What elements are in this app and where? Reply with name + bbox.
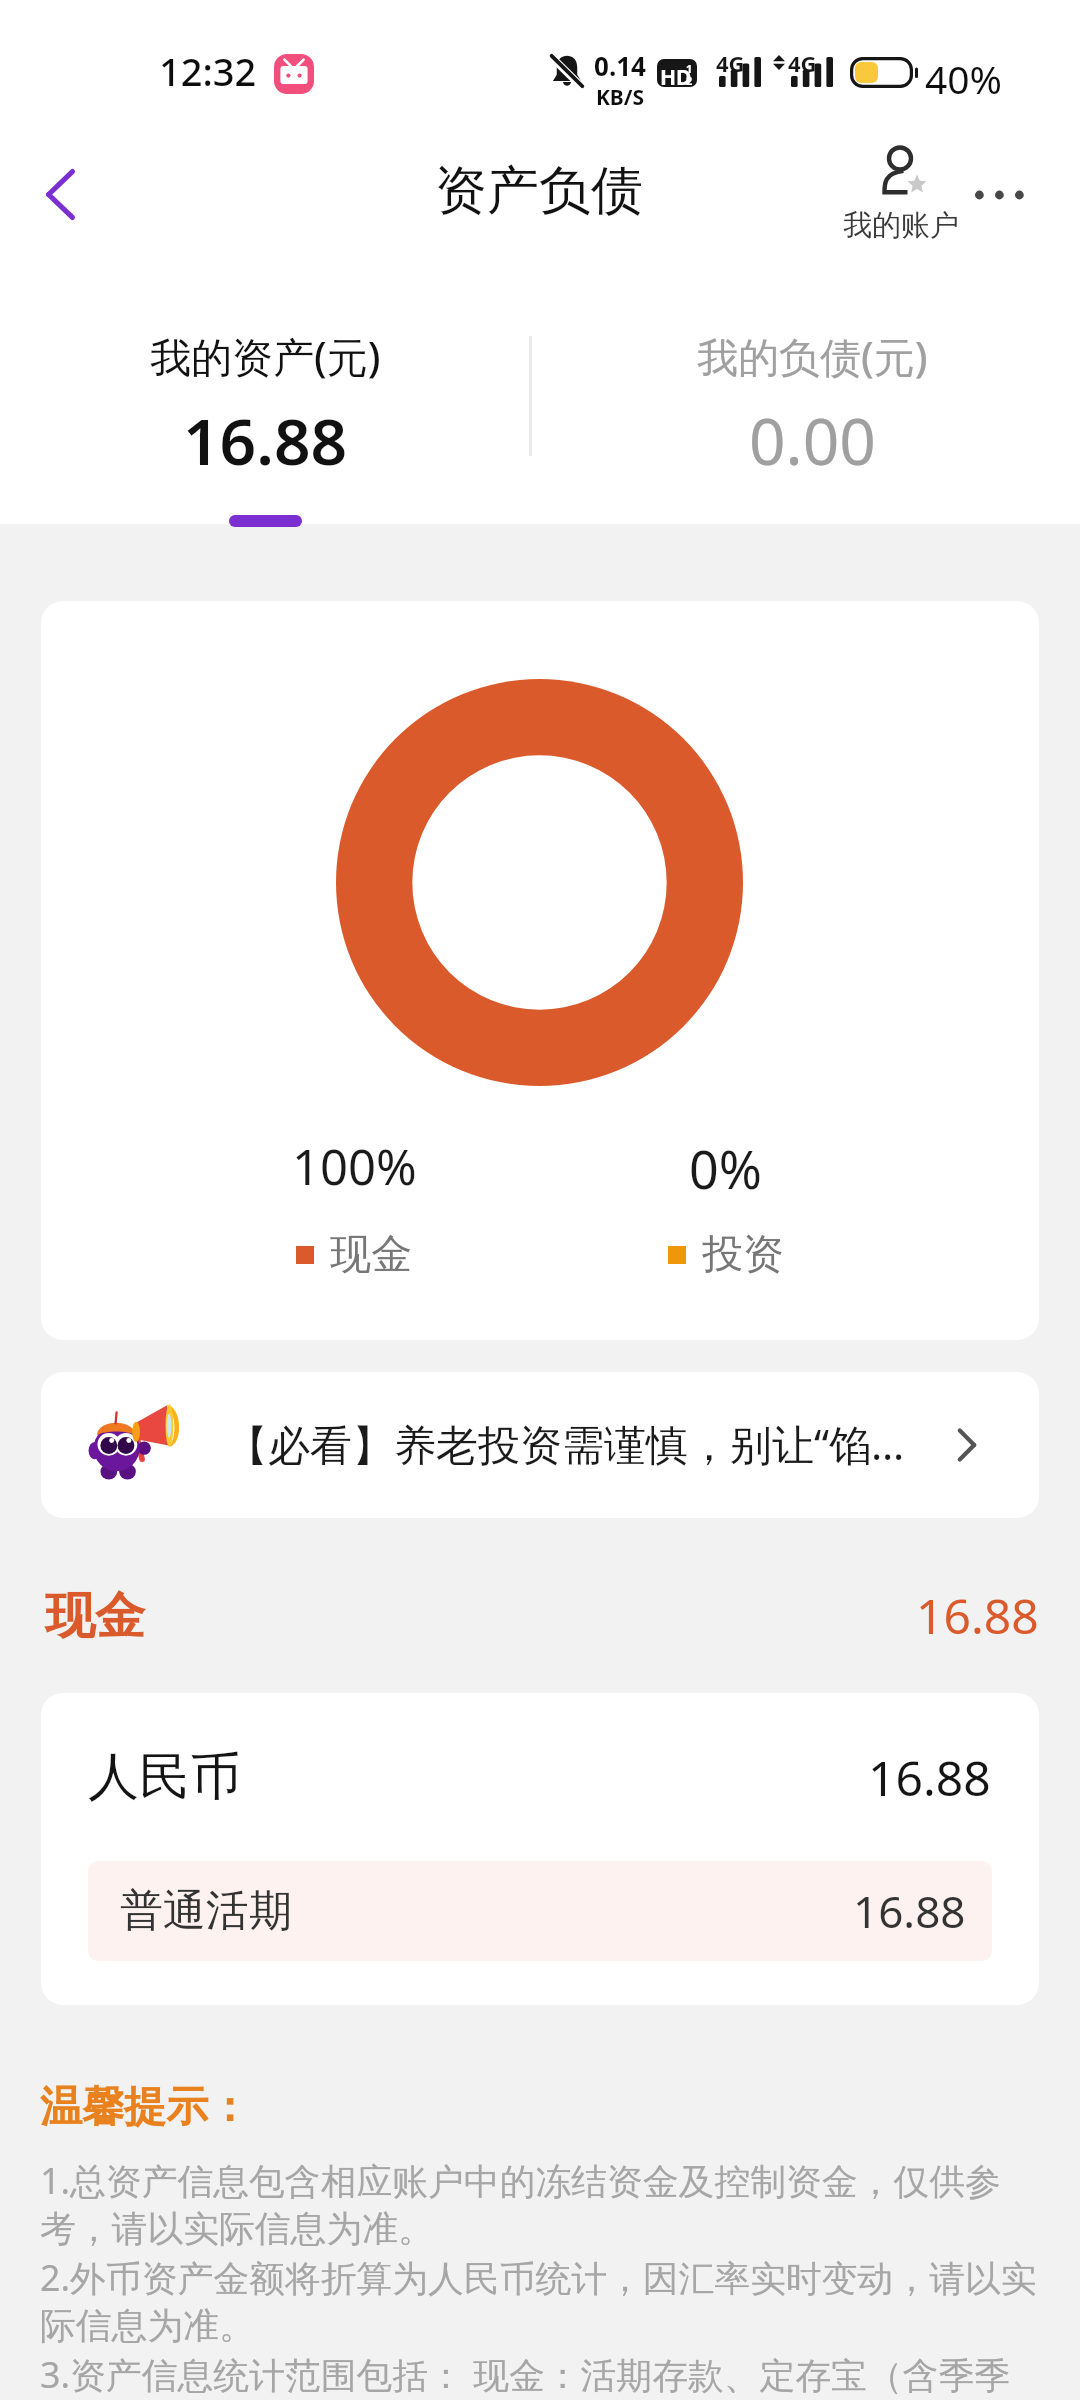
button[interactable]: More options <box>962 151 1050 239</box>
staticText: 2 <box>686 73 697 87</box>
button[interactable]: 【必看】养老投资需谨慎，别让“馅… <box>41 1372 1039 1518</box>
staticText: 现金 <box>330 1229 412 1281</box>
staticText: 1.总资产信息包含相应账户中的冻结资金及控制资金，仅供参 考，请以实际信息为准。… <box>40 2156 1079 2400</box>
staticText: HD <box>660 63 694 87</box>
staticText: 现金 <box>45 1585 145 1648</box>
staticText: 16.88 <box>868 1745 991 1810</box>
staticText: 40% <box>925 52 1003 105</box>
staticText: 16.88 <box>183 397 348 484</box>
staticText: 1 <box>686 61 697 76</box>
staticText: 我的账户 <box>843 207 959 244</box>
staticText: 资产负债 <box>435 158 643 224</box>
staticText: 普通活期 <box>120 1884 292 1938</box>
staticText: 16.88 <box>916 1583 1039 1648</box>
staticText: 4G <box>788 48 817 78</box>
button[interactable]: Back <box>12 146 108 242</box>
staticText: 【必看】养老投资需谨慎，别让“馅… <box>226 1415 905 1472</box>
staticText: 人民币 <box>88 1745 241 1809</box>
button[interactable]: 我的账户 <box>838 147 964 244</box>
button[interactable]: 我的负债(元) <box>547 290 1077 540</box>
staticText: 投资 <box>702 1229 784 1281</box>
staticText: 4G <box>716 48 745 78</box>
button[interactable]: 普通活期 <box>88 1861 992 1961</box>
button[interactable]: 人民币 <box>41 1707 1039 1847</box>
staticText: KB/S <box>592 83 648 112</box>
button[interactable]: 我的资产(元) <box>0 290 530 540</box>
staticText: 我的资产(元) <box>150 328 381 384</box>
staticText: 温馨提示： <box>40 2081 250 2134</box>
staticText: 0.00 <box>749 397 876 484</box>
staticText: 12:32 <box>159 45 257 97</box>
staticText: 16.88 <box>853 1881 966 1941</box>
staticText: 100% <box>292 1133 417 1200</box>
other: Open notice <box>937 1415 997 1475</box>
staticText: 我的负债(元) <box>697 328 928 384</box>
staticText: 0% <box>689 1133 762 1204</box>
staticText: 0.14 <box>592 48 648 83</box>
